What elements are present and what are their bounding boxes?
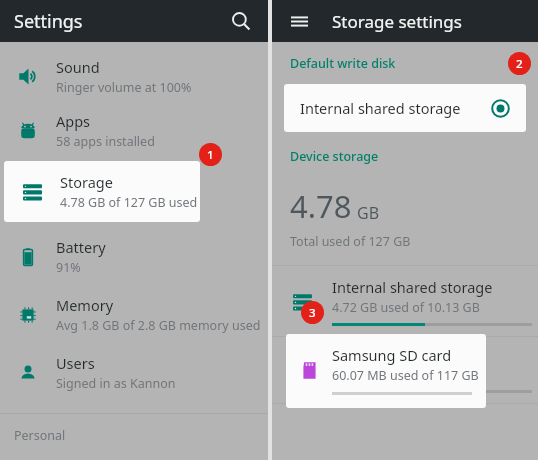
staticText: 4.72 GB used of 10.13 GB [332, 299, 480, 316]
button[interactable]: Search [226, 6, 256, 36]
staticText: 91% [56, 259, 81, 276]
staticText: 4.78 GB of 127 GB used [60, 194, 198, 211]
staticText: Settings [14, 9, 83, 34]
staticText: 60.07 MB used of 117 GB [332, 367, 479, 384]
staticText: 58 apps installed [56, 133, 155, 150]
staticText: 3 [309, 305, 316, 321]
staticText: Avg 1.8 GB of 2.8 GB memory used [56, 317, 261, 334]
button[interactable]: Internal shared storage [272, 266, 538, 336]
staticText: Battery [56, 237, 106, 257]
staticText: 4.78 [290, 185, 352, 227]
button[interactable]: Apps [0, 109, 268, 152]
staticText: Total used of 127 GB [290, 233, 411, 250]
staticText: Sound [56, 57, 100, 77]
staticText: 1 [207, 147, 214, 163]
staticText: Device storage [290, 148, 379, 165]
staticText: GB [357, 202, 380, 224]
staticText: Samsung SD card [332, 345, 452, 365]
button[interactable]: Internal shared storage [284, 84, 526, 132]
staticText: Internal shared storage [300, 98, 461, 118]
staticText: Signed in as Kannon [56, 375, 176, 392]
button[interactable]: Storage [4, 161, 200, 222]
staticText: Default write disk [290, 55, 396, 72]
button[interactable]: Users [0, 351, 268, 394]
button[interactable]: Sound [0, 55, 268, 98]
staticText: Personal [14, 427, 66, 444]
button[interactable]: Menu [286, 8, 312, 34]
button[interactable]: Samsung SD card [286, 334, 486, 408]
staticText: 2 [516, 56, 523, 72]
staticText: Internal shared storage [332, 277, 493, 297]
staticText: Apps [56, 111, 91, 131]
staticText: Users [56, 353, 95, 373]
staticText: Ringer volume at 100% [56, 79, 192, 96]
staticText: Memory [56, 295, 114, 315]
button[interactable]: Battery [0, 235, 268, 278]
staticText: Storage settings [332, 10, 462, 33]
staticText: Storage [60, 172, 113, 192]
button[interactable] [272, 337, 538, 403]
button[interactable]: Memory [0, 293, 268, 336]
